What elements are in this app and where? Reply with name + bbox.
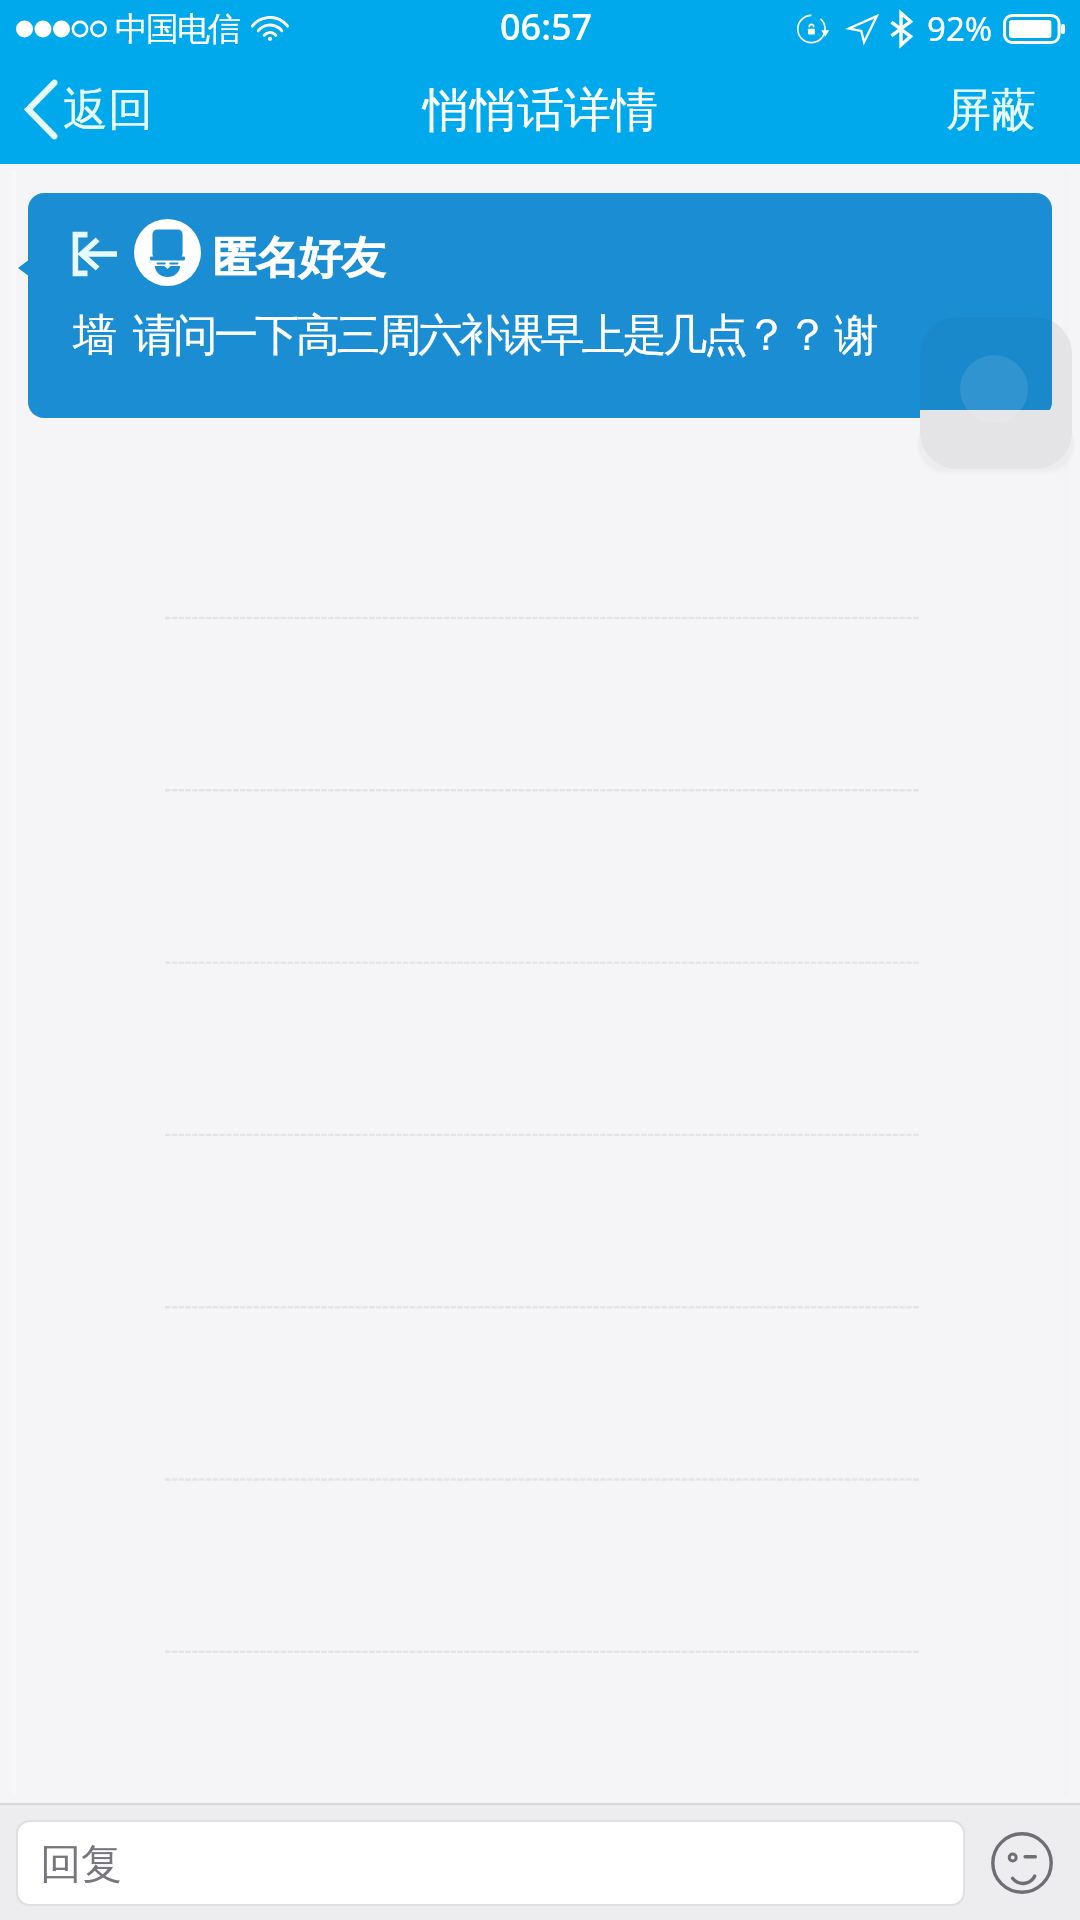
- staticText: 06:57: [500, 2, 593, 51]
- button[interactable]: 返回: [0, 74, 175, 147]
- button[interactable]: Emoji keyboard: [984, 1825, 1060, 1901]
- staticText: 返回: [63, 82, 153, 139]
- staticText: 匿名好友: [213, 231, 385, 286]
- button[interactable]: 屏蔽: [916, 68, 1080, 153]
- staticText: 屏蔽: [946, 82, 1036, 139]
- staticText: 悄悄话详情: [423, 81, 658, 140]
- staticText: 中国电信: [116, 8, 240, 50]
- staticText: 墙 请问一下高三周六补课早上是几点？？ 谢: [73, 303, 876, 363]
- button[interactable]: Floating action button: [912, 309, 1080, 477]
- button[interactable]: 回复: [16, 1820, 965, 1906]
- staticText: 回复: [40, 1839, 122, 1891]
- staticText: 92%: [927, 6, 993, 51]
- button[interactable]: 匿名好友: [28, 193, 1052, 418]
